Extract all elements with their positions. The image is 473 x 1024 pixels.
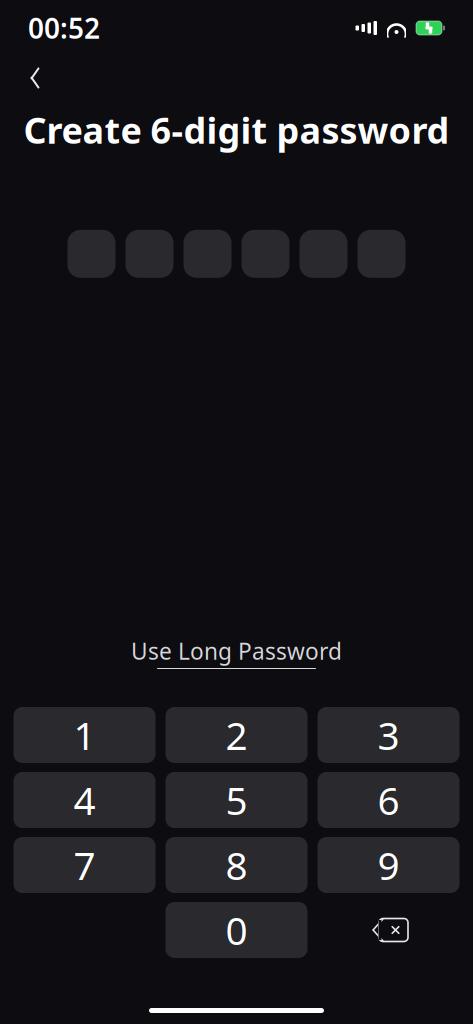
staticText: 6 — [377, 774, 399, 826]
button[interactable]: 0 — [165, 902, 307, 958]
button[interactable]: 9 — [317, 837, 459, 893]
staticText: 9 — [377, 839, 399, 891]
button[interactable]: 8 — [165, 837, 307, 893]
staticText: 0 — [225, 904, 247, 956]
staticText: 1 — [73, 709, 95, 761]
button[interactable]: 7 — [13, 837, 155, 893]
button[interactable]: Back — [13, 56, 57, 100]
button[interactable]: 3 — [317, 707, 459, 763]
staticText: Create 6-digit password — [23, 106, 449, 154]
button[interactable]: Use Long Password — [121, 632, 352, 673]
staticText: 00:52 — [28, 9, 100, 47]
staticText: 5 — [225, 774, 247, 826]
staticText: 8 — [225, 839, 247, 891]
button[interactable]: 6 — [317, 772, 459, 828]
staticText: 2 — [225, 709, 247, 761]
button[interactable]: Delete — [317, 902, 459, 958]
staticText: 7 — [73, 839, 95, 891]
button[interactable]: 1 — [13, 707, 155, 763]
button[interactable]: 5 — [165, 772, 307, 828]
staticText: Use Long Password — [131, 636, 342, 666]
button[interactable]: 4 — [13, 772, 155, 828]
button[interactable]: 2 — [165, 707, 307, 763]
staticText: 3 — [377, 709, 399, 761]
staticText: 4 — [73, 774, 95, 826]
